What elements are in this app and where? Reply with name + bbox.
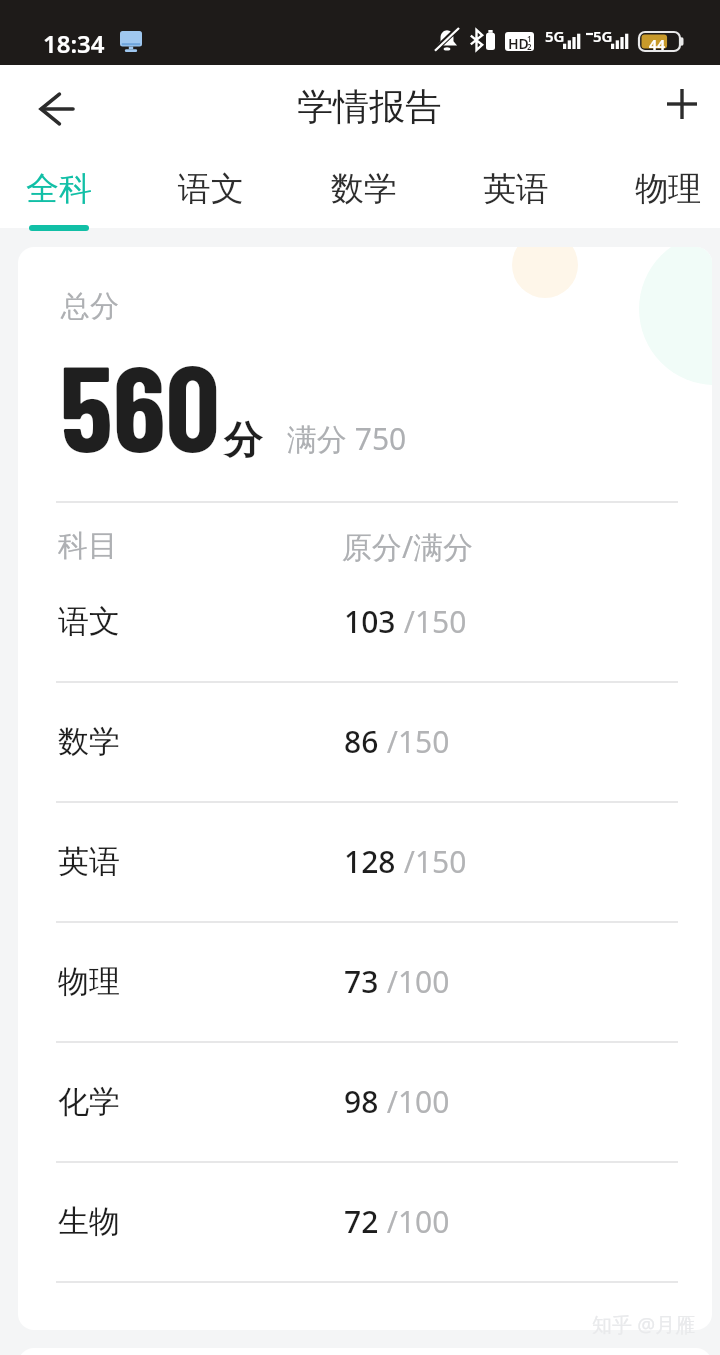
staticText: 5G [545, 26, 565, 46]
button[interactable]: 数学 [302, 155, 426, 245]
staticText: 生物 [58, 1202, 120, 1241]
button[interactable]: 语文 [149, 155, 273, 245]
staticText: /150 [396, 841, 467, 882]
button[interactable]: Back [22, 75, 90, 143]
staticText: 语文 [58, 602, 120, 641]
staticText: 英语 [483, 168, 549, 210]
staticText: /150 [379, 721, 450, 762]
staticText: 知乎 @月雁 [592, 1311, 696, 1338]
staticText: 86 [344, 721, 379, 762]
staticText: 72 [344, 1201, 379, 1242]
button[interactable]: 生物 [18, 1165, 712, 1275]
staticText: 2 [527, 41, 532, 52]
staticText: 103 [344, 601, 396, 642]
staticText: 73 [344, 961, 379, 1002]
staticText: 原分/满分 [342, 526, 474, 567]
button[interactable]: 数学 [18, 685, 712, 795]
staticText: /100 [379, 1081, 450, 1122]
button[interactable]: 物理 [606, 155, 720, 245]
staticText: 英语 [58, 842, 120, 881]
staticText: 语文 [178, 168, 244, 210]
staticText: 总分 [61, 288, 119, 325]
staticText: 数学 [58, 722, 120, 761]
staticText: 分 [224, 416, 262, 464]
button[interactable]: Add [648, 70, 716, 138]
staticText: 物理 [635, 168, 701, 210]
staticText: 5G [593, 26, 613, 46]
staticText: 128 [344, 841, 396, 882]
button[interactable]: 语文 [18, 565, 712, 675]
staticText: 560 [60, 332, 220, 476]
staticText: 化学 [58, 1082, 120, 1121]
staticText: /150 [396, 601, 467, 642]
button[interactable]: 全科 [0, 155, 121, 245]
staticText: 满分 750 [287, 418, 407, 459]
staticText: 98 [344, 1081, 379, 1122]
staticText: 44 [649, 35, 666, 54]
staticText: 学情报告 [9, 84, 720, 129]
staticText: 物理 [58, 962, 120, 1001]
staticText: HD [508, 34, 529, 53]
staticText: 1 [527, 33, 532, 44]
staticText: 科目 [58, 527, 118, 565]
staticText: 全科 [26, 168, 92, 210]
button[interactable]: 英语 [18, 805, 712, 915]
staticText: 18:34 [43, 27, 105, 60]
staticText: /100 [379, 1201, 450, 1242]
staticText: 数学 [331, 168, 397, 210]
button[interactable]: 物理 [18, 925, 712, 1035]
staticText: /100 [379, 961, 450, 1002]
button[interactable]: 化学 [18, 1045, 712, 1155]
button[interactable]: 英语 [454, 155, 578, 245]
